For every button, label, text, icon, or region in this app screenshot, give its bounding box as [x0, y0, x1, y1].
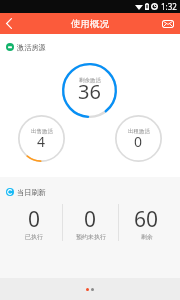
staticText: 使用概况 — [71, 18, 109, 30]
staticText: 剩余激活 — [79, 77, 101, 84]
staticText: 出租激活 — [128, 128, 150, 135]
staticText: 0 — [134, 132, 143, 151]
staticText: 预约未执行 — [76, 233, 106, 241]
button[interactable]: Back — [0, 13, 18, 34]
staticText: 4 — [37, 132, 46, 151]
staticText: 0 — [84, 205, 97, 234]
staticText: 当日刷新 — [17, 188, 46, 197]
staticText: 剩余 — [141, 233, 153, 241]
button[interactable]: 0 — [63, 204, 118, 241]
button[interactable]: 0 — [6, 204, 62, 241]
staticText: 激活房源 — [17, 43, 46, 52]
button[interactable]: 60 — [119, 204, 174, 241]
staticText: 36 — [78, 78, 101, 105]
button[interactable]: Messages — [158, 13, 178, 34]
staticText: 0 — [28, 205, 41, 234]
staticText: 已执行 — [25, 233, 43, 241]
staticText: 60 — [134, 205, 159, 234]
staticText: 1:32 — [161, 1, 177, 12]
staticText: 出售激活 — [31, 128, 53, 135]
